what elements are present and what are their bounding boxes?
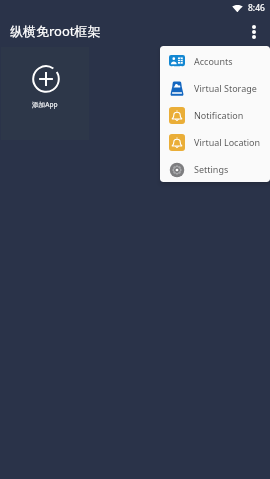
button[interactable]: Virtual Storage xyxy=(160,74,270,101)
staticText: Accounts xyxy=(194,55,233,67)
button[interactable]: 添加App xyxy=(1,47,89,140)
button[interactable]: Settings xyxy=(160,155,270,182)
button[interactable]: Virtual Location xyxy=(160,128,270,155)
staticText: Notification xyxy=(194,109,244,121)
staticText: Settings xyxy=(194,163,229,175)
staticText: 8:46 xyxy=(248,2,265,14)
staticText: 纵横免root框架 xyxy=(10,22,101,40)
staticText: 添加App xyxy=(32,100,58,109)
button[interactable]: More options xyxy=(238,16,270,48)
staticText: Virtual Storage xyxy=(194,82,257,94)
button[interactable]: Notification xyxy=(160,101,270,128)
staticText: Virtual Location xyxy=(194,136,261,148)
button[interactable]: Accounts xyxy=(160,47,270,74)
